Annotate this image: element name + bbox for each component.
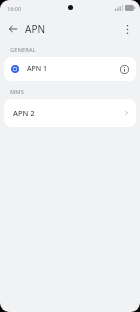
staticText: 16:00 xyxy=(7,5,22,12)
staticText: APN 1 xyxy=(27,64,115,74)
button[interactable]: More options xyxy=(118,20,136,38)
button[interactable]: APN 1 xyxy=(4,57,136,81)
staticText: GENERAL xyxy=(10,46,36,54)
staticText: APN xyxy=(25,22,46,36)
button[interactable]: APN 1 details xyxy=(115,60,133,78)
button[interactable]: APN 2 xyxy=(4,99,136,127)
staticText: MMS xyxy=(10,88,24,96)
staticText: APN 2 xyxy=(13,108,124,118)
button[interactable]: Back xyxy=(4,20,22,38)
